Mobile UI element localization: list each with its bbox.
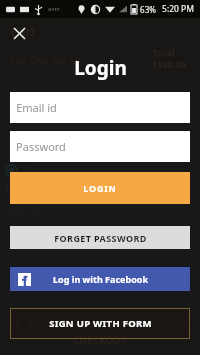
staticText: Log in with Facebook [53, 273, 148, 285]
staticText: 4th co [22, 164, 49, 176]
staticText: Cart [10, 24, 36, 40]
staticText: 63% [140, 4, 156, 15]
button[interactable]: LOGIN [10, 172, 190, 204]
staticText: Chit Chat The M [10, 54, 78, 66]
staticText: Email id [16, 100, 57, 115]
staticText: fo [5, 118, 14, 130]
staticText: ₹540.00 [152, 58, 186, 70]
staticText: es [185, 118, 195, 130]
button[interactable]: FORGET PASSWORD [10, 226, 190, 249]
staticText: Dombivli East [27, 316, 98, 331]
staticText: LOGIN [83, 182, 117, 194]
staticText: FORGET PASSWORD [54, 232, 147, 244]
staticText: Login [74, 55, 127, 81]
staticText: Chit Chat Temple Landmark [10, 267, 115, 278]
staticText: Password [16, 139, 66, 154]
button[interactable]: Email id [10, 92, 190, 123]
button[interactable]: Close [8, 22, 30, 44]
staticText: интл [48, 6, 60, 13]
staticText: 0 [5, 138, 11, 150]
staticText: SIGN UP WITH FORM [49, 317, 152, 330]
staticText: Y [5, 90, 11, 102]
button[interactable]: SIGN UP WITH FORM [10, 308, 190, 339]
staticText: 9.3 [6, 233, 19, 245]
button[interactable]: Password [10, 131, 190, 162]
button[interactable]: Log in with Facebook [10, 267, 190, 291]
staticText: CHECKOUT [73, 333, 127, 347]
staticText: 5:20 PM [162, 3, 194, 15]
staticText: Total [152, 46, 175, 58]
